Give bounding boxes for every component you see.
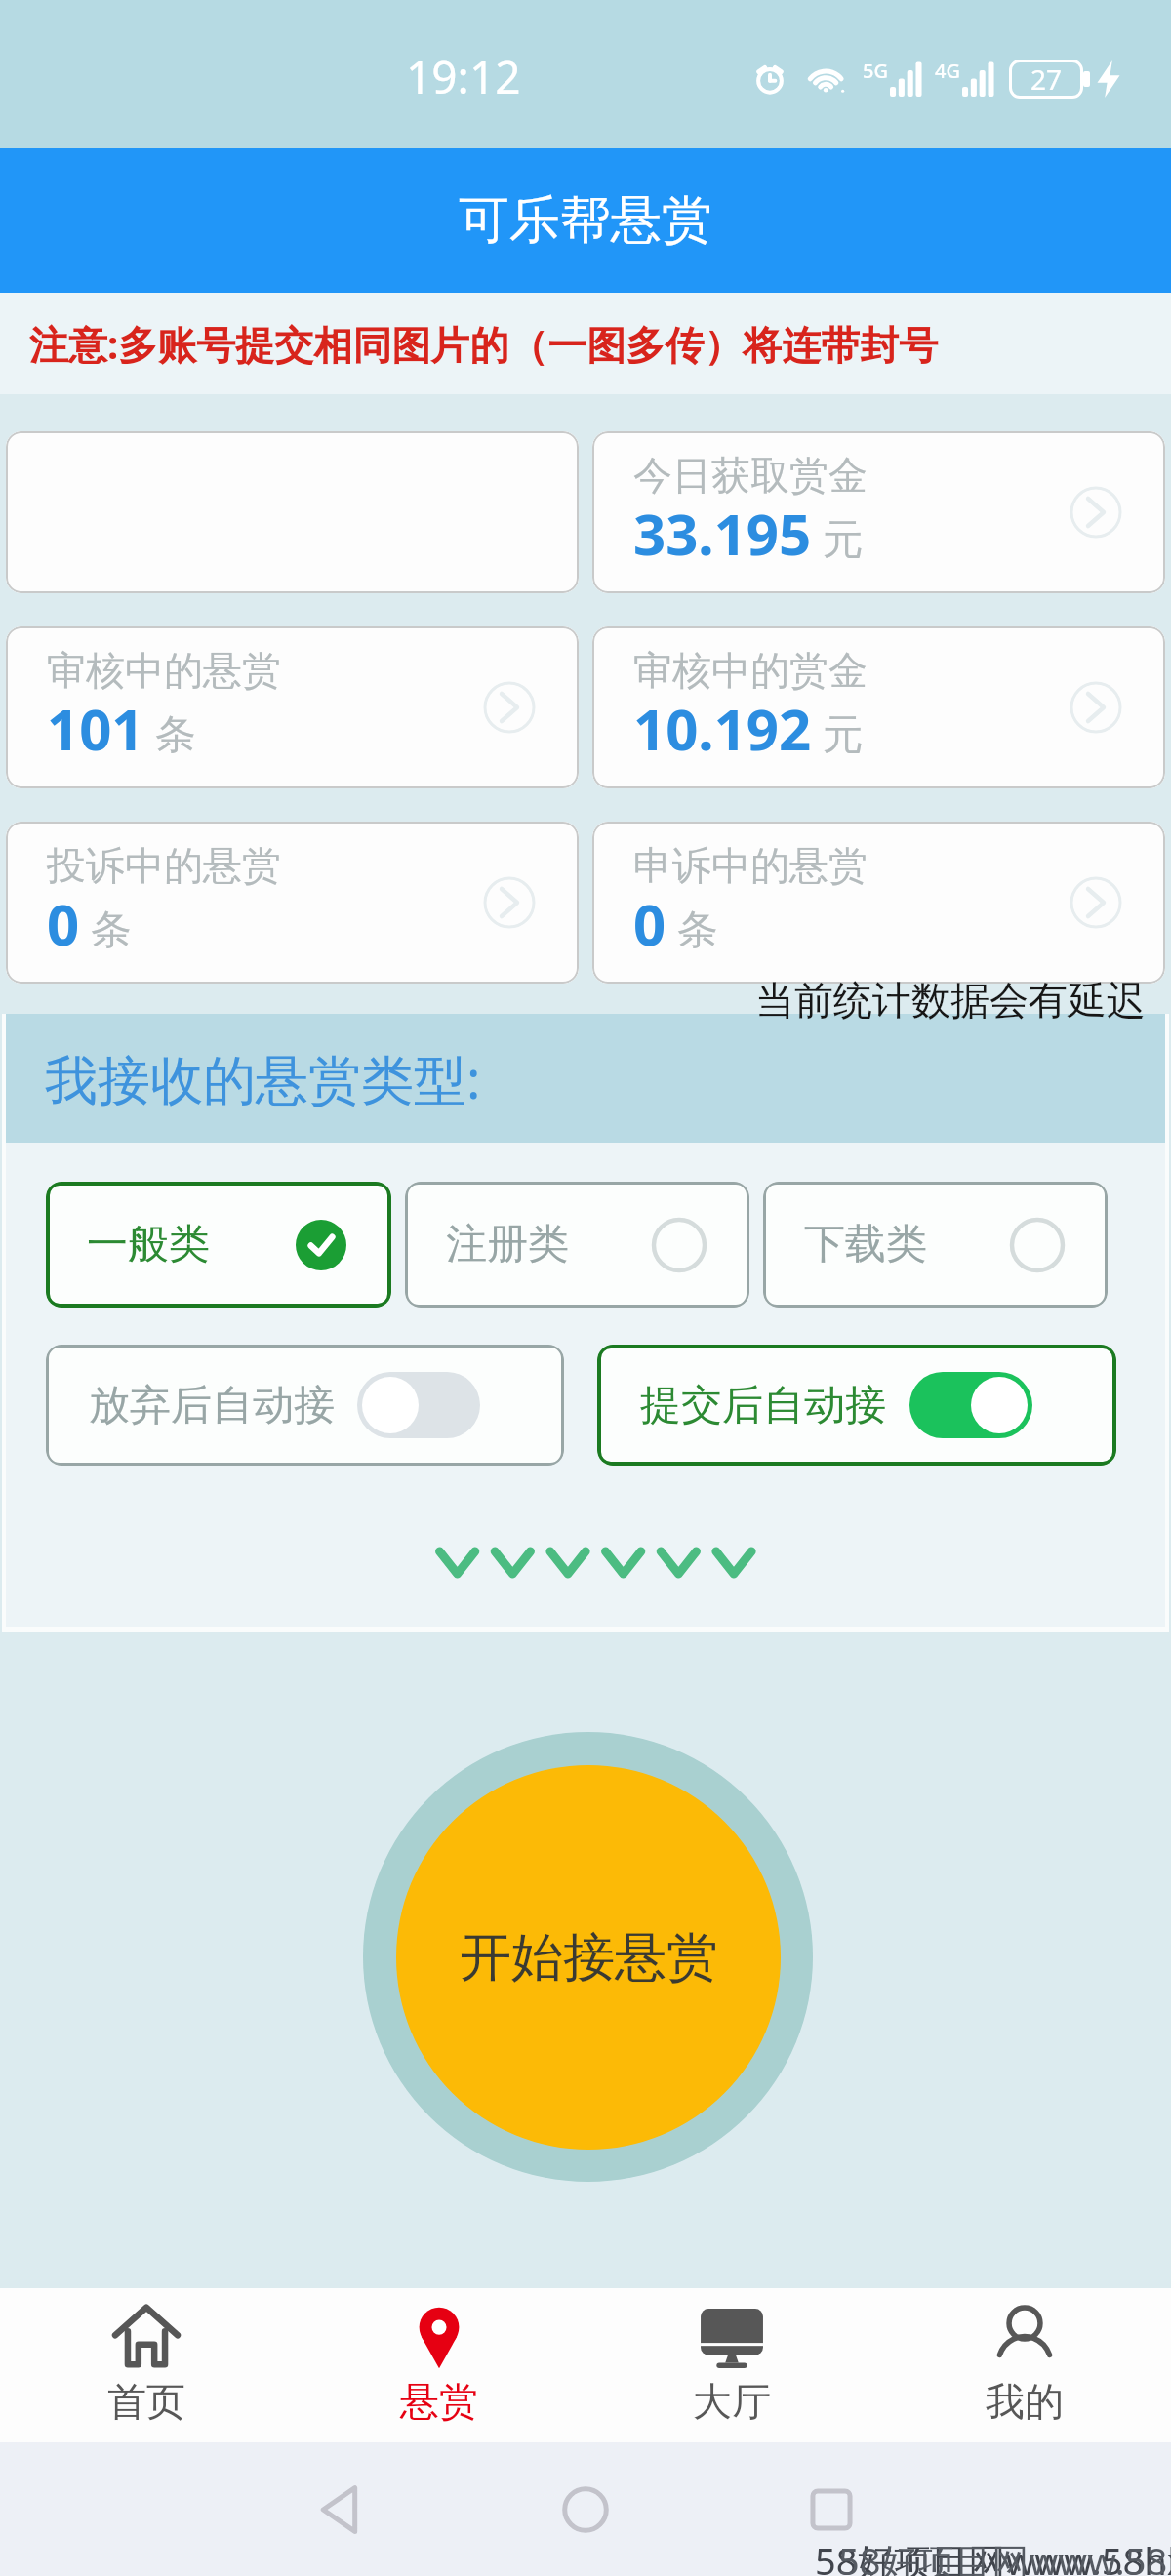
button[interactable]: Recents xyxy=(804,2482,859,2537)
other: 首页 xyxy=(113,2305,180,2371)
staticText: 33.195 xyxy=(633,495,812,572)
staticText: 投诉中的悬赏 xyxy=(47,841,281,890)
staticText: 58好项目网www.58hxz1.com xyxy=(815,2535,1171,2576)
button[interactable]: Home xyxy=(558,2482,613,2537)
button[interactable]: 大厅 xyxy=(585,2288,878,2442)
button[interactable]: 一般类 xyxy=(46,1182,391,1308)
staticText: 0 xyxy=(47,885,80,962)
staticText: 0 xyxy=(633,885,666,962)
staticText: 审核中的悬赏 xyxy=(47,646,281,695)
button[interactable]: 审核中的悬赏 xyxy=(6,626,579,788)
staticText: 首页 xyxy=(107,2377,185,2426)
staticText: 条 xyxy=(155,709,196,761)
staticText: 一般类 xyxy=(87,1219,210,1270)
staticText: 4G xyxy=(935,58,960,84)
staticText: 5G xyxy=(863,58,888,84)
staticText: 注册类 xyxy=(446,1219,569,1270)
button[interactable]: 今日获取赏金 xyxy=(592,431,1165,593)
staticText: 10.192 xyxy=(633,690,812,767)
button[interactable]: 申诉中的悬赏 xyxy=(592,822,1165,984)
staticText: 今日获取赏金 xyxy=(633,451,868,500)
staticText: 元 xyxy=(823,514,864,566)
button[interactable]: 审核中的赏金 xyxy=(592,626,1165,788)
staticText: 条 xyxy=(677,905,718,956)
staticText: 当前统计数据会有延迟 xyxy=(755,976,1146,1025)
button[interactable] xyxy=(6,431,579,593)
other: 悬赏 xyxy=(406,2305,472,2371)
staticText: 我的 xyxy=(986,2377,1064,2426)
button[interactable]: 注册类 xyxy=(405,1182,749,1308)
staticText: 元 xyxy=(823,709,864,761)
staticText: 我接收的悬赏类型: xyxy=(45,1042,481,1114)
button[interactable]: 投诉中的悬赏 xyxy=(6,822,579,984)
other: 我的 xyxy=(991,2305,1058,2371)
button[interactable]: 首页 xyxy=(0,2288,293,2442)
staticText: 58好项目网www.58hxz1.com xyxy=(838,2535,1171,2576)
staticText: 开始接悬赏 xyxy=(460,1925,718,1991)
staticText: 19:12 xyxy=(406,46,521,107)
staticText: 提交后自动接 xyxy=(640,1380,886,1431)
staticText: 审核中的赏金 xyxy=(633,646,868,695)
staticText: 下载类 xyxy=(804,1219,927,1270)
staticText: 27 xyxy=(1030,60,1063,98)
other: 大厅 xyxy=(699,2305,765,2371)
button[interactable]: Back xyxy=(312,2482,367,2537)
button[interactable]: 放弃后自动接 xyxy=(46,1345,564,1466)
staticText: 申诉中的悬赏 xyxy=(633,841,868,890)
button[interactable]: 我的 xyxy=(878,2288,1171,2442)
staticText: 大厅 xyxy=(693,2377,771,2426)
staticText: 101 xyxy=(47,690,144,767)
staticText: 可乐帮悬赏 xyxy=(459,188,712,253)
staticText: 悬赏 xyxy=(400,2377,478,2426)
button[interactable]: 悬赏 xyxy=(293,2288,585,2442)
button[interactable]: 提交后自动接 xyxy=(597,1345,1116,1466)
button[interactable]: 下载类 xyxy=(763,1182,1108,1308)
staticText: 放弃后自动接 xyxy=(89,1380,335,1431)
staticText: 条 xyxy=(91,905,132,956)
button[interactable]: 开始接悬赏 xyxy=(363,1732,813,2182)
staticText: 注意:多账号提交相同图片的（一图多传）将连带封号 xyxy=(29,317,939,371)
